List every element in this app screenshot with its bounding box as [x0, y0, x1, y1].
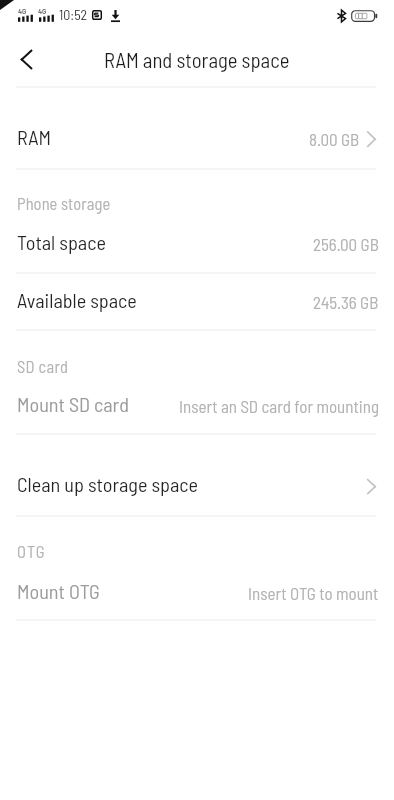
staticText: 4G [38, 6, 47, 16]
staticText: Clean up storage space [17, 472, 199, 496]
staticText: Insert an SD card for mounting [179, 396, 379, 416]
button[interactable] [0, 272, 394, 330]
staticText: 245.36 GB [313, 292, 379, 312]
staticText: Mount OTG [17, 579, 100, 603]
staticText: 4G [18, 6, 27, 16]
staticText: Total space [17, 230, 106, 254]
staticText: Insert OTG to mount [248, 583, 379, 603]
staticText: 10:52 [59, 6, 88, 23]
button[interactable] [0, 374, 394, 434]
button[interactable] [0, 560, 394, 620]
staticText: RAM and storage space [104, 47, 290, 72]
button[interactable] [0, 434, 394, 516]
button[interactable] [0, 87, 394, 168]
staticText: Phone storage [17, 193, 111, 213]
staticText: Available space [17, 288, 137, 312]
staticText: OTG [17, 541, 46, 561]
staticText: Mount SD card [17, 392, 129, 416]
button[interactable] [0, 212, 394, 272]
staticText: SD card [17, 356, 69, 376]
button[interactable]: Back [11, 44, 42, 75]
staticText: 256.00 GB [313, 234, 379, 254]
staticText: RAM [17, 125, 51, 149]
staticText: 8.00 GB [309, 129, 360, 149]
